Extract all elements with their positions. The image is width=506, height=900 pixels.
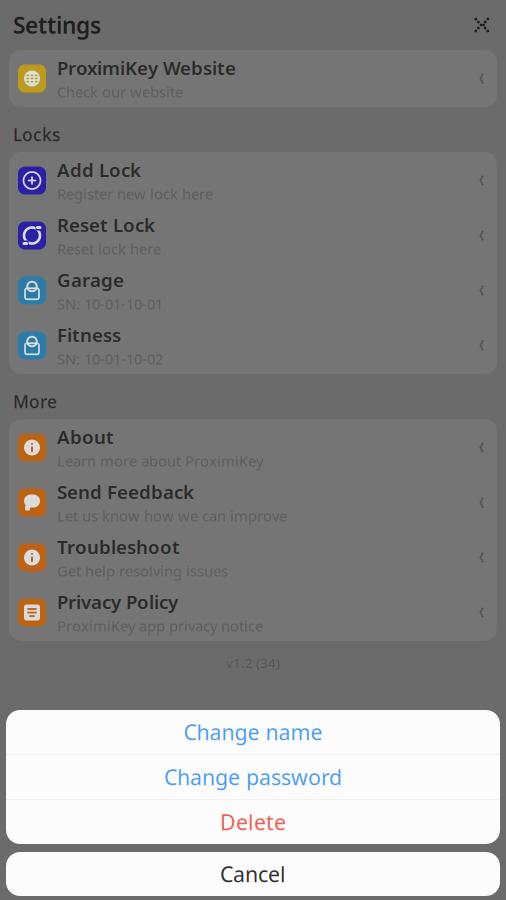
- staticText: Delete: [220, 808, 286, 836]
- staticText: ProximiKey Website: [57, 55, 236, 80]
- staticText: Register new lock here: [57, 184, 213, 204]
- button[interactable]: Add Lock: [9, 153, 497, 208]
- staticText: Garage: [57, 267, 124, 292]
- button[interactable]: Cancel: [6, 852, 500, 896]
- staticText: Reset lock here: [57, 239, 161, 259]
- staticText: Add Lock: [57, 157, 141, 182]
- staticText: Settings: [13, 10, 101, 40]
- button[interactable]: Change name: [6, 710, 500, 754]
- staticText: Troubleshoot: [57, 534, 180, 559]
- button[interactable]: Send Feedback: [9, 475, 497, 530]
- staticText: About: [57, 424, 114, 449]
- staticText: Send Feedback: [57, 479, 194, 504]
- staticText: Cancel: [220, 860, 286, 888]
- button[interactable]: Reset Lock: [9, 208, 497, 263]
- button[interactable]: ProximiKey Website: [9, 51, 497, 106]
- button[interactable]: Delete: [6, 800, 500, 844]
- staticText: Change name: [183, 718, 322, 746]
- staticText: SN: 10-01-10-02: [57, 349, 163, 369]
- staticText: Locks: [13, 123, 60, 146]
- staticText: Get help resolving issues: [57, 561, 228, 581]
- staticText: More: [13, 390, 57, 413]
- button[interactable]: Change password: [6, 755, 500, 799]
- button[interactable]: Privacy Policy: [9, 585, 497, 640]
- staticText: Privacy Policy: [57, 589, 178, 614]
- button[interactable]: Troubleshoot: [9, 530, 497, 585]
- button[interactable]: Garage: [9, 263, 497, 318]
- staticText: ProximiKey app privacy notice: [57, 616, 263, 636]
- button[interactable]: About: [9, 420, 497, 475]
- staticText: SN: 10-01-10-01: [57, 294, 163, 314]
- button[interactable]: Close: [460, 3, 504, 47]
- staticText: Change password: [164, 763, 342, 791]
- staticText: Fitness: [57, 322, 121, 347]
- staticText: Learn more about ProximiKey: [57, 451, 263, 471]
- staticText: Let us know how we can improve: [57, 506, 287, 526]
- button[interactable]: Fitness: [9, 318, 497, 373]
- staticText: Reset Lock: [57, 212, 155, 237]
- staticText: Check our website: [57, 82, 183, 102]
- staticText: v1.2 (34): [226, 654, 280, 672]
